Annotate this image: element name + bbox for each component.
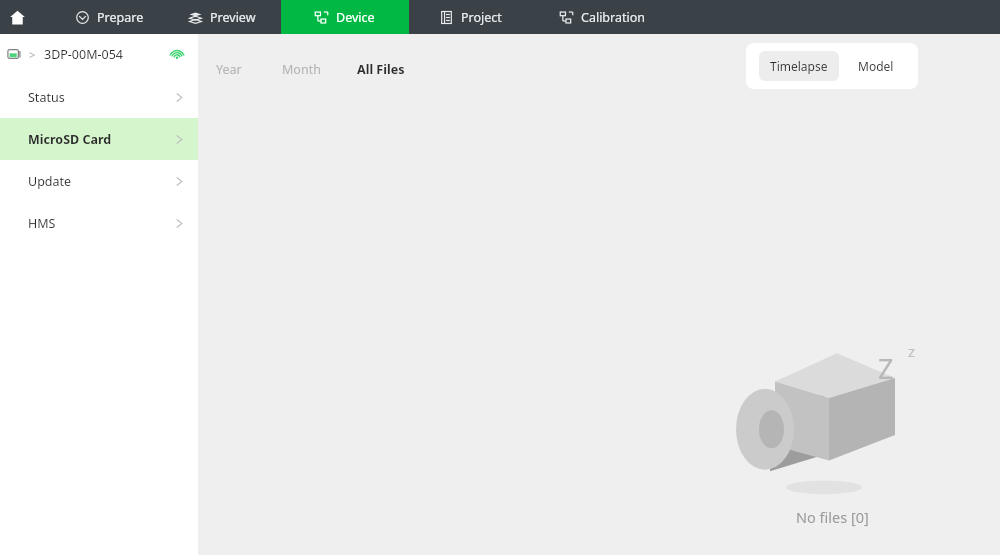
staticText: Preview <box>210 9 256 26</box>
button[interactable]: Prepare <box>56 0 164 34</box>
staticText: Model <box>858 58 894 74</box>
staticText: > <box>29 47 36 62</box>
staticText: Update <box>28 173 72 190</box>
staticText: Project <box>461 9 502 26</box>
button[interactable]: Year <box>214 56 244 83</box>
staticText: Year <box>216 61 242 78</box>
button[interactable]: MicroSD Card <box>0 118 198 160</box>
button[interactable]: HMS <box>0 202 198 244</box>
button[interactable]: Project <box>409 0 533 34</box>
staticText: Device <box>336 9 375 26</box>
button[interactable]: All Files <box>355 56 407 83</box>
staticText: z <box>908 341 916 361</box>
staticText: Timelapse <box>770 58 828 74</box>
staticText: Month <box>282 61 321 78</box>
staticText: 3DP-00M-054 <box>44 46 123 63</box>
staticText: Status <box>28 89 65 106</box>
staticText: MicroSD Card <box>28 131 112 148</box>
staticText: HMS <box>28 215 56 232</box>
button[interactable]: > <box>0 38 198 70</box>
button[interactable]: Model <box>847 51 905 81</box>
staticText: All Files <box>357 61 405 78</box>
button[interactable]: Month <box>280 56 323 83</box>
button[interactable]: Home <box>0 0 34 34</box>
staticText: Prepare <box>97 9 144 26</box>
other: Wi-Fi connected <box>169 46 185 62</box>
staticText: No files [0] <box>796 507 869 527</box>
staticText: Calibration <box>581 9 646 26</box>
button[interactable]: Device <box>281 0 409 34</box>
button[interactable]: Calibration <box>533 0 673 34</box>
button[interactable]: Preview <box>164 0 281 34</box>
button[interactable]: Status <box>0 76 198 118</box>
button[interactable]: Update <box>0 160 198 202</box>
staticText: Z <box>878 350 894 387</box>
button[interactable]: Timelapse <box>759 51 839 81</box>
